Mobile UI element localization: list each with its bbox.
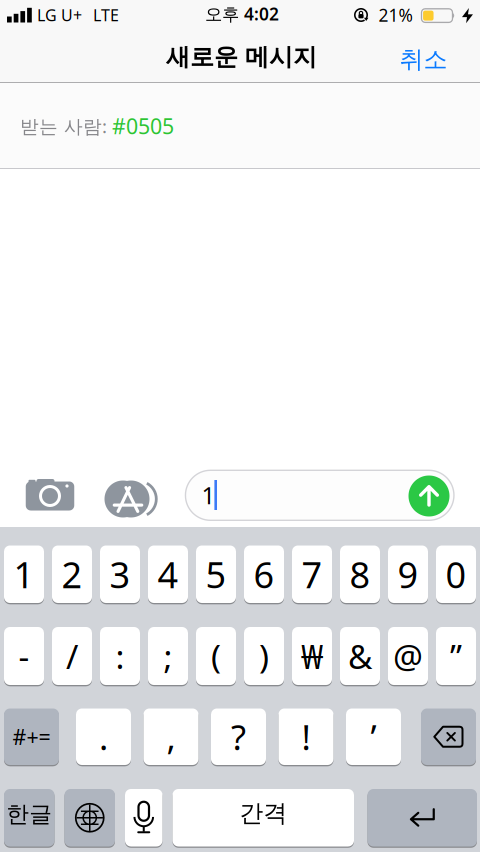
staticText: 4 <box>157 550 178 598</box>
button[interactable]: 2 <box>52 544 92 604</box>
button[interactable]: Message <box>185 470 454 520</box>
staticText: LTE <box>93 4 119 26</box>
staticText: ’ <box>370 714 376 760</box>
button[interactable]: Apps <box>97 474 157 524</box>
button[interactable]: Next keyboard <box>64 788 115 847</box>
button[interactable]: #+= <box>4 707 59 766</box>
staticText: ; <box>163 634 172 678</box>
button[interactable]: / <box>52 626 92 686</box>
button[interactable]: 한글 <box>4 788 54 847</box>
staticText: 1 <box>13 550 34 598</box>
staticText: ! <box>301 714 310 760</box>
button[interactable]: & <box>340 626 380 686</box>
button[interactable]: @ <box>388 626 428 686</box>
staticText: 8 <box>349 550 370 598</box>
staticText: 받는 사람: <box>20 114 107 138</box>
staticText: 간격 <box>239 798 287 828</box>
staticText: 취소 <box>399 45 447 74</box>
staticText: , <box>166 714 175 760</box>
button[interactable]: 간격 <box>172 788 354 847</box>
staticText: 2 <box>61 550 82 598</box>
button[interactable]: 받는 사람: <box>0 83 480 168</box>
button[interactable]: 취소 <box>388 37 458 81</box>
button[interactable]: : <box>100 626 140 686</box>
staticText: ) <box>259 634 269 678</box>
staticText: . <box>99 714 108 760</box>
button[interactable]: 0 <box>436 544 476 604</box>
button[interactable]: Camera <box>20 471 80 521</box>
staticText: 0 <box>445 550 466 598</box>
button[interactable]: - <box>4 626 44 686</box>
button[interactable]: ! <box>278 707 333 766</box>
button[interactable]: 4 <box>148 544 188 604</box>
button[interactable]: Send <box>406 473 451 518</box>
staticText: ( <box>211 634 221 678</box>
button[interactable]: Return <box>367 788 477 847</box>
button[interactable]: 8 <box>340 544 380 604</box>
button[interactable]: Dictate <box>125 788 162 847</box>
staticText: ₩ <box>301 634 323 678</box>
staticText: LG U+ <box>37 4 82 26</box>
staticText: 오후 4:02 <box>205 2 279 25</box>
staticText: @ <box>393 634 423 678</box>
button[interactable]: ’ <box>346 707 401 766</box>
button[interactable]: ; <box>148 626 188 686</box>
button[interactable]: ? <box>211 707 266 766</box>
staticText: / <box>66 634 78 678</box>
button[interactable]: Delete <box>421 707 476 766</box>
button[interactable]: 6 <box>244 544 284 604</box>
button[interactable]: 9 <box>388 544 428 604</box>
button[interactable]: . <box>76 707 131 766</box>
button[interactable]: 3 <box>100 544 140 604</box>
staticText: & <box>348 634 372 678</box>
staticText: - <box>18 634 29 678</box>
staticText: 6 <box>253 550 274 598</box>
staticText: 한글 <box>6 800 52 828</box>
button[interactable]: ₩ <box>292 626 332 686</box>
staticText: : <box>115 634 124 678</box>
button[interactable]: 1 <box>4 544 44 604</box>
staticText: 7 <box>301 550 322 598</box>
button[interactable]: ) <box>244 626 284 686</box>
button[interactable]: 5 <box>196 544 236 604</box>
staticText: ? <box>231 714 246 760</box>
button[interactable]: ( <box>196 626 236 686</box>
button[interactable]: ” <box>436 626 476 686</box>
staticText: ” <box>450 634 462 678</box>
staticText: 21% <box>378 3 412 26</box>
button[interactable]: 7 <box>292 544 332 604</box>
staticText: 3 <box>109 550 130 598</box>
staticText: 1 <box>201 479 215 511</box>
staticText: #0505 <box>112 112 174 140</box>
staticText: 5 <box>205 550 226 598</box>
staticText: 9 <box>397 550 418 598</box>
staticText: #+= <box>12 723 50 751</box>
button[interactable]: , <box>143 707 198 766</box>
staticText: 새로운 메시지 <box>166 42 317 72</box>
